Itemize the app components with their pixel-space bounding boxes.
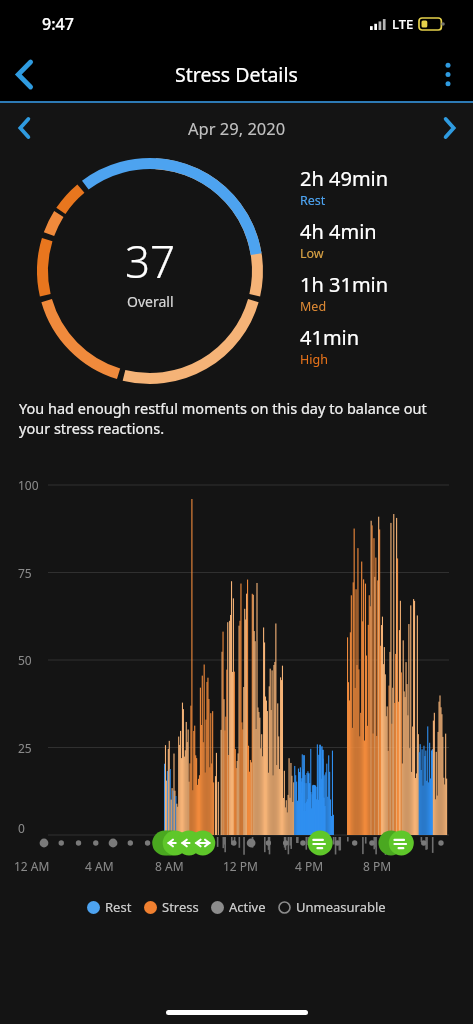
staticText: Rest <box>105 898 132 916</box>
staticText: 37 <box>125 231 176 291</box>
button[interactable]: Stress <box>144 898 199 916</box>
button[interactable]: Rest <box>87 898 132 916</box>
staticText: Stress Details <box>175 61 298 88</box>
staticText: Stress <box>162 898 199 916</box>
staticText: 2h 49min <box>300 165 389 192</box>
staticText: High <box>300 351 328 368</box>
button[interactable]: Previous day <box>0 104 48 152</box>
staticText: 0 <box>18 820 25 836</box>
staticText: 100 <box>18 477 39 493</box>
staticText: 12 AM <box>14 858 50 874</box>
staticText: 4h 4min <box>300 218 377 245</box>
staticText: 9:47 <box>42 13 74 35</box>
staticText: 4 PM <box>295 858 324 874</box>
staticText: Unmeasurable <box>296 898 386 916</box>
button[interactable]: More options <box>423 49 473 99</box>
button[interactable]: Back <box>0 49 50 99</box>
staticText: 8 PM <box>363 858 392 874</box>
staticText: 1h 31min <box>300 271 389 298</box>
staticText: LTE <box>392 15 414 33</box>
staticText: You had enough restful moments on this d… <box>19 398 454 438</box>
staticText: Rest <box>300 192 326 209</box>
staticText: Apr 29, 2020 <box>188 117 286 139</box>
staticText: 75 <box>18 565 32 581</box>
staticText: 50 <box>18 652 32 668</box>
staticText: 4 AM <box>85 858 114 874</box>
staticText: 41min <box>300 324 360 351</box>
staticText: Med <box>300 298 327 315</box>
staticText: Low <box>300 245 324 262</box>
staticText: 12 PM <box>223 858 258 874</box>
button[interactable]: Next day <box>425 104 473 152</box>
staticText: Active <box>229 898 266 916</box>
button[interactable]: Unmeasurable <box>278 898 386 916</box>
staticText: 25 <box>18 740 32 756</box>
button[interactable]: Active <box>211 898 266 916</box>
staticText: 8 AM <box>155 858 184 874</box>
staticText: Overall <box>127 292 174 311</box>
